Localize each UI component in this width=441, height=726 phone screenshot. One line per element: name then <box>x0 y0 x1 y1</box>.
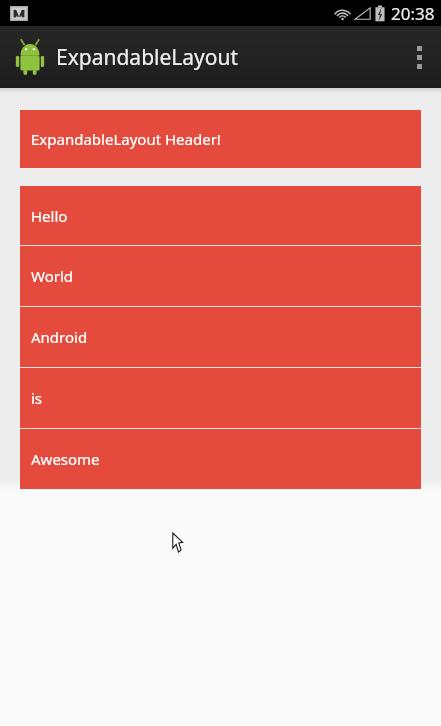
button[interactable]: Hello <box>20 186 421 245</box>
button[interactable]: Android <box>20 307 421 367</box>
staticText: Android <box>31 327 88 347</box>
button[interactable]: World <box>20 246 421 306</box>
button[interactable]: is <box>20 368 421 428</box>
button[interactable]: More options <box>397 26 441 88</box>
button[interactable]: Awesome <box>20 429 421 489</box>
staticText: Awesome <box>31 449 100 469</box>
staticText: ExpandableLayout Header! <box>31 129 221 149</box>
staticText: Hello <box>31 206 68 226</box>
staticText: ExpandableLayout <box>56 43 239 72</box>
staticText: 20:38 <box>391 2 435 25</box>
button[interactable]: ExpandableLayout Header! <box>20 110 421 168</box>
staticText: is <box>31 388 43 408</box>
button[interactable]: ExpandableLayout <box>0 38 239 76</box>
staticText: World <box>31 266 74 286</box>
